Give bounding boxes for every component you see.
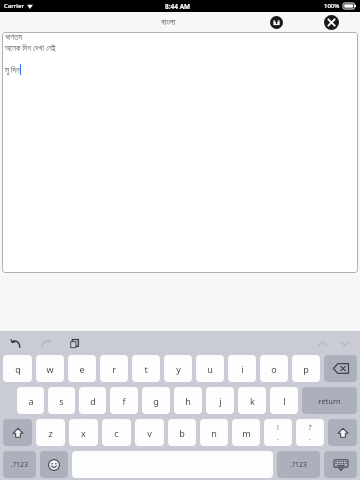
- button[interactable]: Shift: [3, 419, 32, 446]
- button[interactable]: a: [17, 387, 44, 414]
- staticText: w: [46, 363, 54, 375]
- button[interactable]: Backspace: [324, 355, 357, 382]
- button[interactable]: Copy: [65, 334, 83, 352]
- staticText: v: [147, 427, 152, 439]
- button[interactable]: .?123: [277, 451, 320, 478]
- button[interactable]: Next: [336, 335, 352, 351]
- button[interactable]: e: [68, 355, 96, 382]
- staticText: k: [250, 395, 255, 407]
- staticText: d: [90, 395, 96, 407]
- staticText: f: [122, 395, 126, 407]
- button[interactable]: j: [206, 387, 234, 414]
- button[interactable]: Hide keyboard: [324, 451, 357, 478]
- button[interactable]: Undo: [7, 334, 25, 352]
- staticText: b: [179, 427, 185, 439]
- button[interactable]: Emoji: [40, 451, 68, 478]
- button[interactable]: n: [200, 419, 228, 446]
- staticText: c: [114, 427, 119, 439]
- button[interactable]: u: [196, 355, 224, 382]
- button[interactable]: z: [36, 419, 65, 446]
- button[interactable]: t: [132, 355, 160, 382]
- button[interactable]: p: [292, 355, 320, 382]
- staticText: return: [318, 396, 341, 406]
- button[interactable]: h: [174, 387, 202, 414]
- staticText: p: [303, 363, 309, 375]
- staticText: o: [271, 363, 277, 375]
- staticText: সু দিন: [5, 64, 20, 75]
- button[interactable]: Shift: [328, 419, 357, 446]
- staticText: g: [153, 395, 159, 407]
- button[interactable]: x: [69, 419, 98, 446]
- staticText: x: [81, 427, 86, 439]
- staticText: n: [211, 427, 217, 439]
- staticText: z: [48, 427, 53, 439]
- button[interactable]: i: [228, 355, 256, 382]
- staticText: 100%: [324, 2, 340, 10]
- button[interactable]: Close: [318, 12, 344, 32]
- staticText: j: [219, 395, 222, 407]
- staticText: e: [79, 363, 85, 375]
- staticText: a: [28, 395, 34, 407]
- staticText: i: [241, 363, 244, 375]
- button[interactable]: q: [3, 355, 32, 382]
- button[interactable]: Share: [264, 12, 288, 32]
- button[interactable]: o: [260, 355, 288, 382]
- button[interactable]: return: [302, 387, 357, 414]
- button[interactable]: v: [135, 419, 164, 446]
- staticText: ? .: [308, 423, 312, 443]
- button[interactable]: d: [79, 387, 106, 414]
- staticText: s: [59, 395, 64, 407]
- staticText: l: [283, 395, 286, 407]
- staticText: .?123: [290, 460, 307, 470]
- staticText: অনেক দিন দেখা নেই: [5, 42, 56, 53]
- staticText: স্বাগতম: [5, 34, 22, 42]
- button[interactable]: k: [238, 387, 266, 414]
- staticText: m: [242, 427, 251, 439]
- staticText: y: [176, 363, 181, 375]
- staticText: h: [185, 395, 191, 407]
- button[interactable]: c: [102, 419, 131, 446]
- button[interactable]: g: [142, 387, 170, 414]
- staticText: বাংলা: [161, 18, 176, 27]
- staticText: u: [207, 363, 213, 375]
- button[interactable]: Previous: [314, 335, 330, 351]
- button[interactable]: s: [48, 387, 75, 414]
- button[interactable]: f: [110, 387, 138, 414]
- button[interactable]: স্বাগতম: [2, 32, 358, 273]
- button[interactable]: m: [232, 419, 260, 446]
- staticText: .?123: [11, 460, 28, 470]
- staticText: 8:44 AM: [165, 2, 191, 11]
- button[interactable]: ? .: [296, 419, 324, 446]
- button[interactable]: ! .: [264, 419, 292, 446]
- button[interactable]: y: [164, 355, 192, 382]
- button[interactable]: b: [168, 419, 196, 446]
- button[interactable]: .?123: [3, 451, 36, 478]
- staticText: r: [112, 363, 116, 375]
- staticText: ! .: [277, 423, 279, 443]
- staticText: t: [144, 363, 148, 375]
- button[interactable]: r: [100, 355, 128, 382]
- staticText: Carrier: [4, 2, 24, 10]
- button[interactable]: w: [36, 355, 64, 382]
- button[interactable]: l: [270, 387, 298, 414]
- button[interactable]: Redo: [36, 334, 54, 352]
- staticText: q: [15, 363, 21, 375]
